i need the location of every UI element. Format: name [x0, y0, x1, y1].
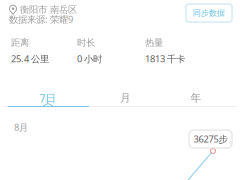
staticText: 衡阳市 南岳区 — [20, 4, 77, 15]
staticText: 距离 — [11, 37, 29, 48]
staticText: 同步数据 — [193, 8, 225, 18]
button[interactable]: 月 — [89, 89, 161, 107]
staticText: 时长 — [77, 37, 95, 48]
staticText: 0 小时 — [77, 52, 102, 65]
button[interactable]: 年 — [160, 89, 232, 107]
staticText: 年 — [190, 91, 201, 104]
staticText: 月 — [120, 91, 131, 104]
staticText: 数据来源: 荣耀9 — [9, 13, 73, 25]
staticText: 7日 — [39, 91, 56, 105]
button[interactable]: 36275步 — [189, 130, 232, 148]
staticText: 25.4 公里 — [11, 52, 49, 65]
button[interactable]: 7日 — [0, 89, 96, 107]
staticText: 1813 千卡 — [145, 52, 185, 65]
staticText: 热量 — [145, 37, 163, 48]
button[interactable]: 同步数据 — [186, 4, 232, 22]
staticText: 8月 — [14, 121, 28, 133]
staticText: 36275步 — [193, 133, 227, 145]
